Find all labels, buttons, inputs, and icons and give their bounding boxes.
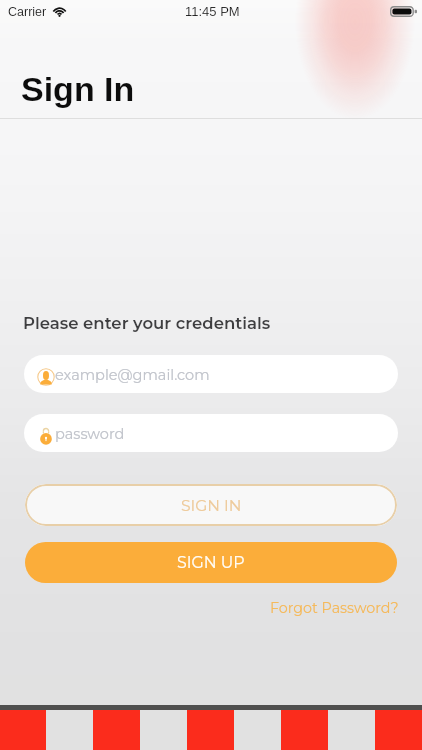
staticText: SIGN IN xyxy=(181,496,242,515)
staticText: Carrier xyxy=(8,5,47,19)
staticText: Sign In xyxy=(21,70,135,108)
other: User xyxy=(37,368,55,386)
staticText: example@gmail.com xyxy=(55,366,210,384)
other: Password xyxy=(37,427,55,445)
button[interactable]: SIGN UP xyxy=(25,542,397,583)
staticText: password xyxy=(55,425,125,443)
staticText: Please enter your credentials xyxy=(23,313,271,333)
button[interactable]: User xyxy=(24,355,398,393)
button[interactable]: Password xyxy=(24,414,398,452)
button[interactable]: SIGN IN xyxy=(25,484,397,526)
staticText: SIGN UP xyxy=(177,553,245,572)
button[interactable]: Forgot Password? xyxy=(266,595,403,620)
staticText: 11:45 PM xyxy=(185,4,240,19)
